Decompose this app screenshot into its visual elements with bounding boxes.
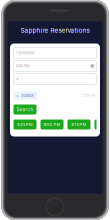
staticText: 6:00 PM [43,122,60,127]
staticText: Search [16,107,33,112]
button[interactable]: 5:45 PM [13,119,36,129]
staticText: 6:15 PM [71,122,86,127]
staticText: Sapphire Reservations [20,27,89,34]
button[interactable]: Clear all [80,91,96,99]
button[interactable]: 6:15 PM [67,119,90,129]
staticText: 6:30 PM [98,122,110,127]
button[interactable]: × [13,91,37,99]
staticText: 6:00 PM [16,64,29,68]
staticText: 5:45 PM [17,122,33,127]
staticText: Outdoor [20,93,34,98]
button[interactable]: 6:00 PM [40,119,63,129]
staticText: Clear all [81,93,95,98]
staticText: 4 [16,77,18,81]
button[interactable]: Search [13,104,36,114]
button[interactable]: 6:30 PM [94,119,110,129]
staticText: × [16,93,19,98]
staticText: 13/10/2020 [16,51,34,55]
